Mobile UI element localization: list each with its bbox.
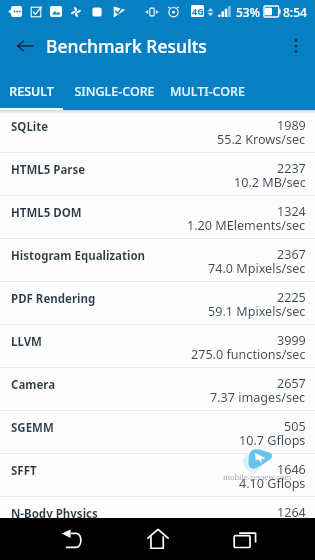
staticText: N-Body Physics [11,506,213,518]
staticText: 2657 [277,375,306,392]
staticText: Camera [11,377,210,393]
staticText: SFFT [11,463,239,479]
staticText: 10.7 Gflops [239,432,306,449]
staticText: 8:54 [283,4,307,20]
staticText: 10.2 MB/sec [234,174,306,191]
button[interactable]: Recents [223,518,267,560]
button[interactable]: PDF Rendering [0,282,315,324]
staticText: 1.20 MElements/sec [187,217,306,234]
staticText: 2225 [277,289,306,306]
staticText: Benchmark Results [46,34,207,58]
staticText: LLVM [11,334,191,350]
staticText: 2367 [277,246,306,263]
button[interactable]: Histogram Equalization [0,239,315,281]
staticText: mobile-review.com [223,472,292,482]
button[interactable]: SFFT [0,454,315,496]
staticText: RESULT [9,83,54,100]
staticText: 1264 [277,504,306,518]
staticText: 3999 [277,332,306,349]
staticText: 59.1 Mpixels/sec [208,303,306,320]
staticText: Histogram Equalization [11,248,208,264]
staticText: 275.0 functions/sec [191,346,306,363]
button[interactable]: LLVM [0,325,315,367]
staticText: SGEMM [11,420,239,436]
staticText: MULTI-CORE [170,83,245,100]
staticText: 7.37 images/sec [210,389,306,406]
button[interactable]: MULTI-CORE [166,67,248,110]
staticText: 53% [236,4,260,20]
staticText: 55.2 Krows/sec [217,131,306,148]
button[interactable]: HTML5 DOM [0,196,315,238]
staticText: SQLite [11,119,217,135]
staticText: 1646 [277,461,306,478]
staticText: HTML5 Parse [11,162,234,178]
button[interactable]: SGEMM [0,411,315,453]
button[interactable]: Back [49,518,93,560]
button[interactable]: RESULT [0,67,63,110]
button[interactable]: Camera [0,368,315,410]
staticText: 2237 [277,160,306,177]
button[interactable]: HTML5 Parse [0,153,315,195]
staticText: 74.0 Mpixels/sec [208,260,306,277]
staticText: 505 [284,418,306,435]
staticText: 1324 [277,203,306,220]
staticText: HTML5 DOM [11,205,187,221]
staticText: 4G [192,5,204,17]
button[interactable]: Home [136,518,180,560]
staticText: 4.10 Gflops [239,475,306,492]
staticText: SINGLE-CORE [74,83,155,100]
staticText: PDF Rendering [11,291,208,307]
button[interactable]: SQLite [0,110,315,152]
staticText: 1989 [277,117,306,134]
button[interactable]: SINGLE-CORE [63,67,166,110]
button[interactable]: Back [9,30,40,61]
button[interactable]: N-Body Physics [0,497,315,518]
button[interactable]: More options [281,31,311,61]
